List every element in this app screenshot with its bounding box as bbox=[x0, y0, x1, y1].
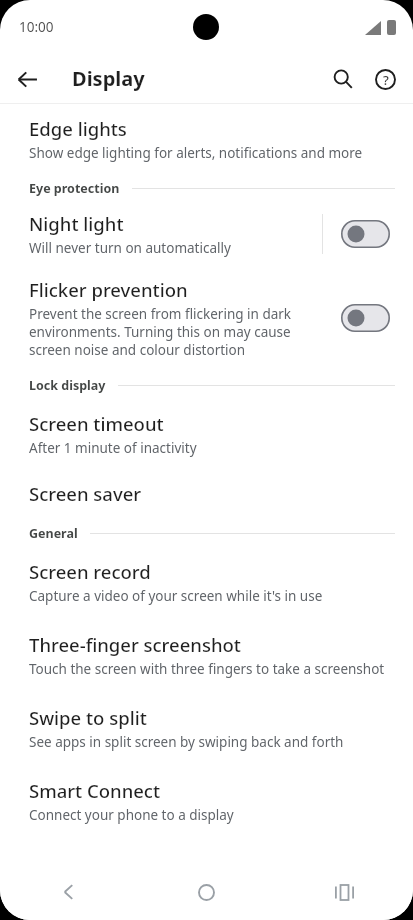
staticText: Display bbox=[72, 65, 145, 92]
button[interactable]: Edge lights bbox=[0, 104, 413, 162]
staticText: See apps in split screen by swiping back… bbox=[29, 733, 344, 751]
staticText: Smart Connect bbox=[29, 778, 161, 803]
staticText: Lock display bbox=[29, 377, 106, 394]
button[interactable]: Night light bbox=[339, 217, 391, 251]
staticText: Prevent the screen from flickering in da… bbox=[29, 305, 331, 359]
button[interactable]: Flicker prevention bbox=[339, 301, 391, 335]
staticText: Flicker prevention bbox=[29, 277, 188, 302]
button[interactable]: Recent apps bbox=[275, 864, 413, 920]
staticText: Screen saver bbox=[29, 481, 142, 506]
staticText: Night light bbox=[29, 211, 124, 236]
button[interactable]: Three-finger screenshot bbox=[0, 605, 413, 678]
button[interactable]: Screen timeout bbox=[0, 394, 413, 457]
staticText: ? bbox=[383, 71, 389, 89]
button[interactable]: Smart Connect bbox=[0, 751, 413, 824]
staticText: Three-finger screenshot bbox=[29, 632, 241, 657]
staticText: 10:00 bbox=[19, 18, 54, 36]
staticText: Show edge lighting for alerts, notificat… bbox=[29, 144, 363, 162]
staticText: Edge lights bbox=[29, 116, 127, 141]
button[interactable]: Back bbox=[0, 864, 137, 920]
staticText: Will never turn on automatically bbox=[29, 239, 231, 257]
button[interactable]: Flicker prevention bbox=[0, 257, 413, 359]
button[interactable]: Swipe to split bbox=[0, 678, 413, 751]
button[interactable]: Screen saver bbox=[0, 457, 413, 506]
staticText: General bbox=[29, 525, 78, 542]
staticText: After 1 minute of inactivity bbox=[29, 439, 197, 457]
button[interactable]: Screen record bbox=[0, 542, 413, 605]
staticText: Screen record bbox=[29, 559, 151, 584]
staticText: Eye protection bbox=[29, 180, 120, 197]
staticText: Swipe to split bbox=[29, 705, 147, 730]
staticText: Connect your phone to a display bbox=[29, 806, 234, 824]
staticText: Touch the screen with three fingers to t… bbox=[29, 660, 385, 678]
button[interactable]: Search bbox=[322, 58, 364, 100]
staticText: Screen timeout bbox=[29, 411, 164, 436]
button[interactable]: Back bbox=[7, 59, 47, 99]
button[interactable]: Night light bbox=[0, 197, 413, 257]
button[interactable]: Help bbox=[364, 58, 406, 100]
staticText: Capture a video of your screen while it'… bbox=[29, 587, 323, 605]
button[interactable]: Home bbox=[137, 864, 275, 920]
